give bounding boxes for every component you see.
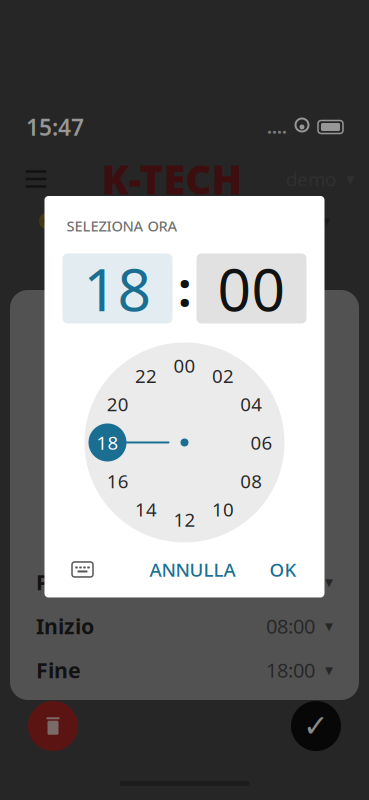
staticText: 22 (135, 363, 157, 388)
button[interactable]: ANNULLA (139, 549, 245, 589)
button[interactable]: Elimina (28, 701, 78, 751)
staticText: 08 (240, 469, 262, 493)
staticText: ▾ (346, 169, 355, 189)
staticText: SELEZIONA ORA (66, 216, 177, 235)
button[interactable]: Stanza precedente (36, 239, 80, 283)
button[interactable]: 18 (62, 253, 172, 323)
button[interactable]: demo (286, 157, 355, 201)
staticText: OK (269, 557, 296, 582)
button[interactable]: 00 (196, 253, 306, 323)
staticText: ‹ (52, 234, 63, 287)
staticText: › (305, 234, 316, 287)
staticText: ✓ (303, 709, 329, 743)
staticText: 18 (96, 430, 118, 455)
staticText: 14 (135, 497, 157, 522)
staticText: 10 (212, 497, 234, 522)
staticText: Programmazione invernale (64, 208, 315, 234)
staticText: Periodo (36, 568, 117, 596)
button[interactable]: Periodo (36, 560, 333, 604)
staticText: 00 (173, 353, 195, 378)
staticText: ▾ (323, 213, 330, 229)
button[interactable]: Inizio (36, 604, 333, 648)
staticText: 18 (83, 249, 151, 327)
staticText: .... (267, 115, 287, 138)
staticText: SOGGIORNO (92, 241, 277, 281)
staticText: : (178, 257, 191, 320)
staticText: ANNULLA (149, 557, 235, 582)
staticText: K-TECH (101, 152, 242, 205)
button[interactable]: Menu (14, 157, 58, 201)
staticText: 16 (107, 469, 129, 493)
staticText: 06 (250, 430, 272, 455)
staticText: 02 (212, 363, 234, 388)
staticText: 08:00 (266, 613, 315, 639)
staticText: 18 (96, 430, 118, 455)
button[interactable]: Stanza successiva (289, 239, 333, 283)
button[interactable]: OK (259, 549, 306, 589)
staticText: ▾ (325, 573, 333, 591)
button[interactable]: Programmazione invernale (39, 204, 330, 238)
staticText: ▾ (325, 617, 333, 635)
staticText: Inizio (36, 612, 94, 640)
button[interactable]: Fine (36, 648, 333, 692)
staticText: 12 (173, 507, 195, 532)
staticText: 18:00 (266, 657, 315, 683)
staticText: demo (286, 167, 336, 191)
button[interactable]: Inserimento da tastiera (62, 549, 102, 589)
staticText: ▾ (325, 661, 333, 679)
staticText: 04 (240, 392, 262, 416)
staticText: 00 (217, 249, 285, 327)
staticText: Fine (36, 656, 81, 684)
button[interactable]: Conferma (291, 701, 341, 751)
staticText: 15:47 (26, 112, 84, 142)
staticText: 20 (107, 392, 129, 416)
